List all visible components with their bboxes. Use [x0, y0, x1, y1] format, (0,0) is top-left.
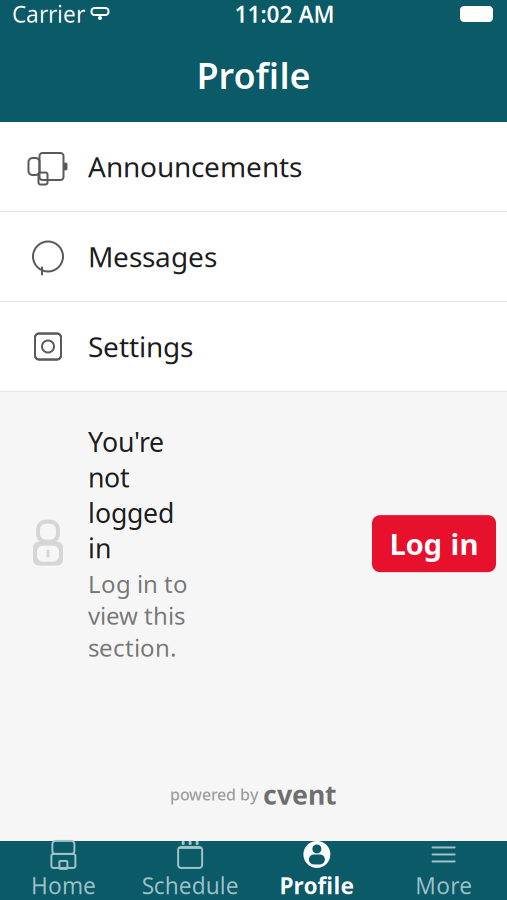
staticText: 11:02 AM	[234, 0, 334, 29]
staticText: More	[415, 870, 472, 900]
button[interactable]: More	[380, 841, 507, 900]
button[interactable]: Home	[0, 841, 127, 900]
staticText: cvent	[263, 777, 337, 812]
staticText: Profile	[279, 870, 354, 900]
staticText: You're not logged in	[88, 424, 174, 566]
button[interactable]: Profile	[253, 841, 380, 900]
button[interactable]: Log in	[372, 515, 496, 572]
staticText: Messages	[88, 238, 217, 275]
button[interactable]: Schedule	[127, 841, 254, 900]
staticText: Schedule	[142, 870, 239, 900]
staticText: Carrier	[12, 0, 85, 29]
staticText: Profile	[196, 51, 310, 99]
staticText: Settings	[88, 328, 193, 365]
staticText: Announcements	[88, 148, 302, 185]
staticText: Home	[31, 870, 96, 900]
staticText: Log in	[389, 524, 478, 563]
button[interactable]: Messages	[0, 212, 507, 301]
staticText: powered by	[170, 784, 258, 805]
button[interactable]: Announcements	[0, 122, 507, 211]
button[interactable]: Settings	[0, 302, 507, 391]
staticText: Log in to view this section.	[88, 568, 188, 663]
